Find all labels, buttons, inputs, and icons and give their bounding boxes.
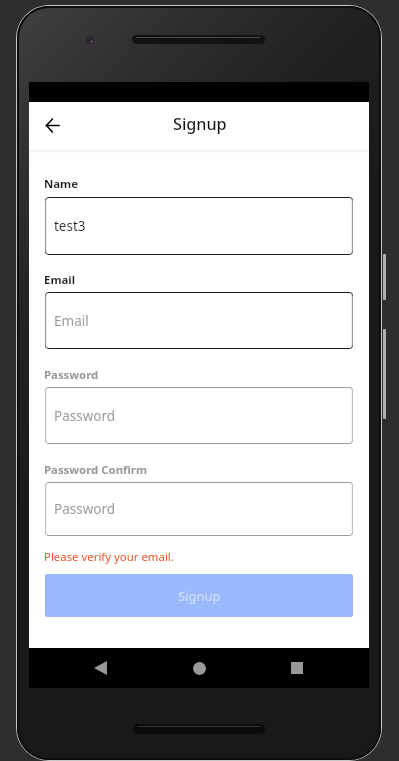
- staticText: Password: [54, 500, 116, 518]
- staticText: Signup: [178, 587, 221, 604]
- staticText: Password: [44, 367, 99, 383]
- staticText: Please verify your email.: [44, 549, 174, 565]
- button[interactable]: Home: [179, 648, 219, 688]
- staticText: test3: [54, 217, 86, 235]
- button[interactable]: Recents: [277, 648, 317, 688]
- staticText: Password: [54, 407, 116, 425]
- button[interactable]: Email: [45, 292, 353, 349]
- staticText: Email: [44, 272, 76, 288]
- button[interactable]: Signup: [45, 574, 353, 617]
- staticText: Password Confirm: [44, 462, 148, 478]
- button[interactable]: Password: [45, 387, 353, 444]
- staticText: Email: [54, 312, 89, 330]
- button[interactable]: Back: [80, 648, 120, 688]
- button[interactable]: Password: [45, 482, 353, 536]
- button[interactable]: test3: [45, 197, 353, 255]
- staticText: Signup: [173, 113, 227, 135]
- button[interactable]: Back: [34, 107, 70, 143]
- staticText: Name: [44, 176, 78, 192]
